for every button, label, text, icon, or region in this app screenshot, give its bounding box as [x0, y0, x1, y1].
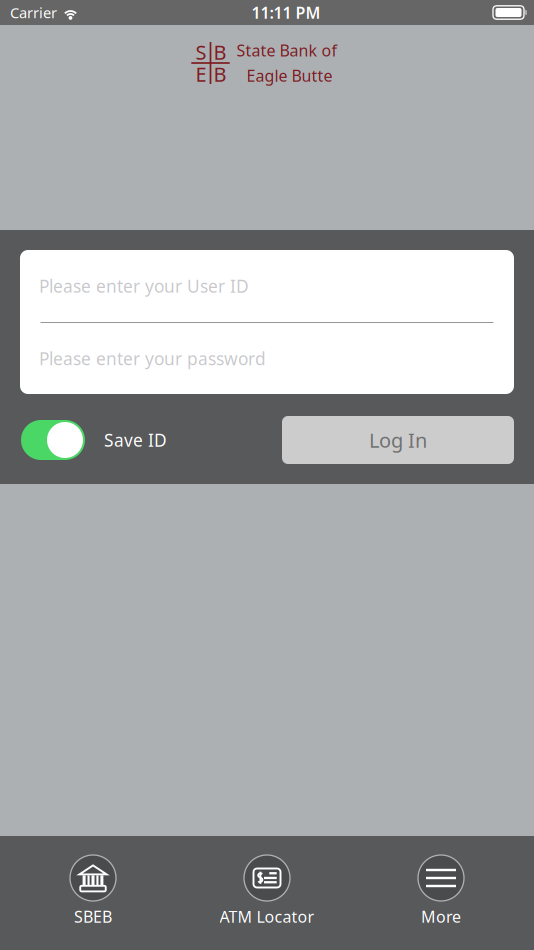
staticText: Please enter your User ID — [39, 274, 249, 297]
staticText: Log In — [369, 427, 427, 453]
button[interactable]: More — [354, 836, 528, 950]
staticText: B — [213, 61, 226, 87]
staticText: Save ID — [104, 428, 167, 451]
button[interactable]: Log In — [282, 416, 514, 464]
staticText: ATM Locator — [219, 906, 314, 927]
staticText: More — [421, 906, 461, 927]
button[interactable]: SBEB — [6, 836, 180, 950]
staticText: SBEB — [74, 906, 112, 927]
staticText: Please enter your password — [39, 347, 266, 370]
staticText: E — [195, 61, 206, 87]
staticText: Carrier — [10, 3, 57, 22]
staticText: State Bank of — [236, 40, 337, 61]
staticText: B — [213, 39, 226, 65]
staticText: Eagle Butte — [246, 65, 332, 86]
staticText: S — [195, 39, 206, 65]
button[interactable]: Save ID — [20, 416, 250, 464]
button[interactable]: ATM Locator — [180, 836, 354, 950]
staticText: 11:11 PM — [251, 2, 320, 23]
